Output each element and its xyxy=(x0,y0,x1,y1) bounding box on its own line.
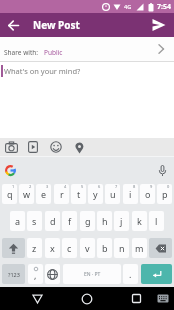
button[interactable] xyxy=(0,13,26,37)
button[interactable]: u xyxy=(105,184,120,204)
button[interactable]: r xyxy=(54,184,69,204)
staticText: x xyxy=(50,242,55,254)
staticText: p xyxy=(162,188,168,200)
staticText: 7:54 xyxy=(157,2,171,12)
staticText: r xyxy=(60,188,64,200)
staticText: . xyxy=(129,268,132,280)
button[interactable] xyxy=(50,141,62,153)
button[interactable]: n xyxy=(114,238,129,258)
staticText: EN · PT xyxy=(84,271,101,278)
button[interactable]: . xyxy=(123,264,138,284)
staticText: 2 xyxy=(29,184,32,189)
button[interactable] xyxy=(149,238,172,258)
staticText: 9 xyxy=(150,184,153,189)
staticText: i xyxy=(129,188,132,200)
button[interactable]: i xyxy=(123,184,138,204)
button[interactable] xyxy=(26,287,48,310)
staticText: m xyxy=(135,242,144,254)
button[interactable]: q xyxy=(2,184,17,204)
button[interactable] xyxy=(74,142,85,153)
staticText: 3 xyxy=(46,184,49,189)
button[interactable] xyxy=(158,165,167,177)
staticText: b xyxy=(102,242,108,254)
button[interactable] xyxy=(141,264,172,284)
staticText: h xyxy=(102,215,108,227)
staticText: j xyxy=(120,215,123,227)
staticText: g xyxy=(85,215,91,227)
staticText: d xyxy=(50,215,56,227)
button[interactable]: ?123 xyxy=(2,264,25,284)
button[interactable]: What's on your mind? xyxy=(0,62,174,138)
button[interactable]: h xyxy=(97,211,112,231)
staticText: c xyxy=(67,242,72,254)
staticText: t xyxy=(77,188,81,200)
staticText: y xyxy=(93,188,98,200)
button[interactable]: s xyxy=(27,211,42,231)
button[interactable]: w xyxy=(19,184,34,204)
staticText: ?123 xyxy=(8,271,20,278)
button[interactable]: o xyxy=(140,184,155,204)
button[interactable]: f xyxy=(62,211,77,231)
button[interactable]: c xyxy=(62,238,77,258)
button[interactable]: m xyxy=(132,238,147,258)
staticText: u xyxy=(110,188,116,200)
button[interactable] xyxy=(76,287,98,310)
staticText: q xyxy=(7,188,13,200)
button[interactable]: z xyxy=(27,238,42,258)
button[interactable]: b xyxy=(97,238,112,258)
button[interactable]: l xyxy=(149,211,164,231)
staticText: 0 xyxy=(167,184,170,189)
button[interactable]: a xyxy=(10,211,25,231)
button[interactable]: y xyxy=(88,184,103,204)
staticText: 4 xyxy=(64,184,67,189)
button[interactable]: Share with: xyxy=(0,37,174,61)
button[interactable]: d xyxy=(45,211,60,231)
button[interactable]: , xyxy=(28,264,43,284)
button[interactable] xyxy=(2,238,25,258)
button[interactable] xyxy=(5,165,16,176)
button[interactable]: x xyxy=(45,238,60,258)
staticText: Share with: xyxy=(4,48,39,57)
staticText: 4G xyxy=(124,3,132,10)
staticText: v xyxy=(85,242,90,254)
button[interactable] xyxy=(152,287,174,310)
staticText: n xyxy=(119,242,125,254)
staticText: e xyxy=(41,188,47,200)
button[interactable] xyxy=(146,13,172,37)
staticText: f xyxy=(68,215,72,227)
staticText: 8 xyxy=(133,184,136,189)
button[interactable]: k xyxy=(132,211,147,231)
staticText: 7 xyxy=(115,184,118,189)
button[interactable]: EN · PT xyxy=(63,264,121,284)
button[interactable] xyxy=(27,141,39,153)
staticText: s xyxy=(32,215,37,227)
staticText: 5 xyxy=(81,184,84,189)
button[interactable] xyxy=(4,140,18,154)
staticText: New Post xyxy=(33,18,80,32)
button[interactable]: v xyxy=(80,238,95,258)
button[interactable]: p xyxy=(157,184,172,204)
button[interactable] xyxy=(45,264,60,284)
staticText: , xyxy=(34,269,37,281)
button[interactable]: g xyxy=(80,211,95,231)
staticText: 1 xyxy=(12,184,15,189)
staticText: a xyxy=(15,215,21,227)
button[interactable]: e xyxy=(36,184,51,204)
staticText: o xyxy=(145,188,151,200)
staticText: l xyxy=(155,215,158,227)
staticText: Public xyxy=(44,48,63,57)
button[interactable]: j xyxy=(114,211,129,231)
staticText: What's on your mind? xyxy=(4,66,81,76)
staticText: k xyxy=(137,215,142,227)
button[interactable]: t xyxy=(71,184,86,204)
staticText: 6 xyxy=(98,184,101,189)
staticText: z xyxy=(32,242,37,254)
staticText: w xyxy=(23,188,31,200)
button[interactable] xyxy=(125,287,147,310)
